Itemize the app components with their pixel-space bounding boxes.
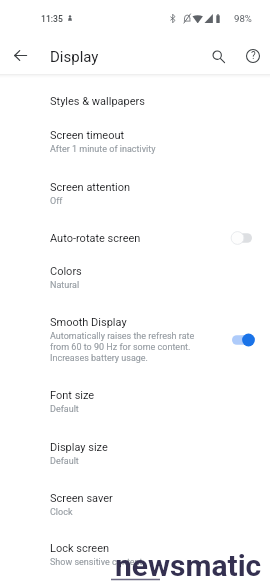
staticText: Increases battery usage. bbox=[50, 353, 148, 364]
staticText: Screen timeout bbox=[50, 129, 125, 142]
staticText: 98% bbox=[234, 13, 252, 24]
staticText: Smooth Display bbox=[50, 316, 127, 329]
button[interactable]: Screen timeout bbox=[0, 129, 270, 155]
button[interactable]: Lock screen bbox=[0, 542, 270, 568]
staticText: from 60 to 90 Hz for some content. bbox=[50, 342, 191, 353]
staticText: 11:35 bbox=[41, 14, 63, 24]
button[interactable]: Display size bbox=[0, 441, 270, 467]
staticText: Display bbox=[50, 48, 99, 66]
button[interactable]: Help bbox=[240, 43, 266, 69]
button[interactable]: Back bbox=[9, 44, 31, 66]
staticText: Natural bbox=[50, 280, 80, 291]
button[interactable]: Colors bbox=[0, 265, 270, 291]
staticText: Colors bbox=[50, 265, 82, 278]
button[interactable]: Styles & wallpapers bbox=[0, 95, 270, 108]
button[interactable]: Smooth Display bbox=[0, 316, 270, 364]
staticText: ? bbox=[251, 50, 256, 62]
staticText: Off bbox=[50, 196, 63, 207]
staticText: Display size bbox=[50, 441, 108, 454]
staticText: Screen saver bbox=[50, 492, 113, 505]
staticText: Default bbox=[50, 404, 79, 415]
button[interactable]: Auto-rotate screen bbox=[0, 229, 270, 247]
staticText: Screen attention bbox=[50, 181, 131, 194]
staticText: Automatically raises the refresh rate bbox=[50, 331, 195, 342]
button[interactable] bbox=[231, 229, 253, 247]
button[interactable]: Screen attention bbox=[0, 181, 270, 207]
button[interactable]: Search bbox=[205, 43, 231, 69]
staticText: Lock screen bbox=[50, 542, 110, 555]
staticText: Auto-rotate screen bbox=[50, 232, 141, 245]
button[interactable]: Font size bbox=[0, 389, 270, 415]
staticText: Clock bbox=[50, 507, 73, 518]
staticText: newsmatic bbox=[115, 548, 262, 583]
staticText: Font size bbox=[50, 389, 95, 402]
staticText: After 1 minute of inactivity bbox=[50, 144, 156, 155]
staticText: Default bbox=[50, 456, 79, 467]
button[interactable] bbox=[231, 331, 253, 349]
staticText: Show sensitive content bbox=[50, 557, 143, 568]
button[interactable]: Screen saver bbox=[0, 492, 270, 518]
staticText: Styles & wallpapers bbox=[50, 95, 145, 108]
